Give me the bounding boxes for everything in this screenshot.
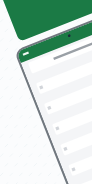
button[interactable]: App promotional mockup bbox=[0, 0, 92, 184]
